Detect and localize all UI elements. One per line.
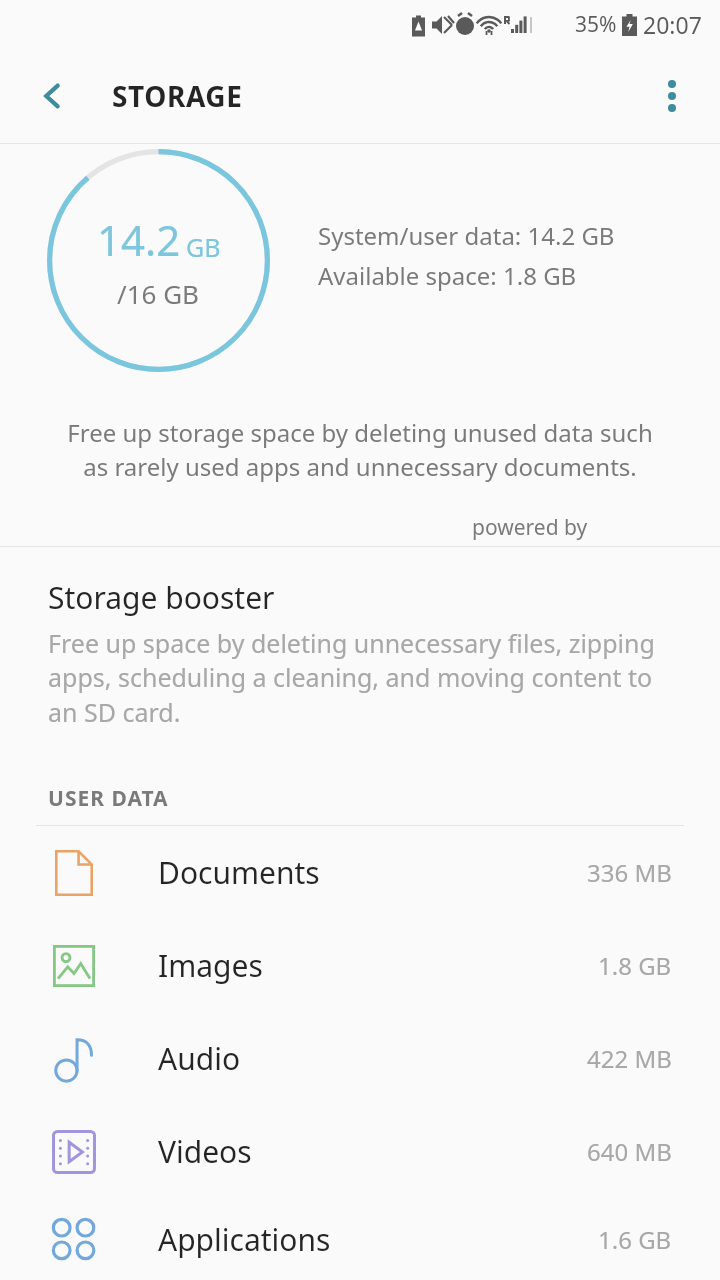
staticText: 20:07 [643,9,702,40]
button[interactable]: Videos [0,1105,720,1198]
staticText: STORAGE [112,77,243,115]
staticText: System/user data: 14.2 GB [318,219,615,252]
staticText: 1.8 GB [598,949,672,982]
staticText: Videos [158,1131,252,1172]
button[interactable]: Storage booster [0,547,720,740]
staticText: Free up storage space by deleting unused… [52,416,668,483]
staticText: powered by [472,513,588,542]
staticText: Free up space by deleting unnecessary fi… [48,626,670,730]
staticText: Storage booster [48,577,275,618]
staticText: USER DATA [48,784,169,813]
button[interactable]: More options [646,70,698,122]
staticText: /16 GB [117,276,200,311]
button[interactable]: Audio [0,1012,720,1105]
staticText: 35% [575,10,617,39]
staticText: Audio [158,1038,241,1079]
button[interactable]: Back [28,71,78,121]
staticText: Documents [158,852,320,893]
staticText: 1.6 GB [598,1223,672,1256]
button[interactable]: Applications [0,1198,720,1280]
staticText: 336 MB [587,856,672,889]
staticText: 422 MB [587,1042,672,1075]
staticText: GB [186,230,221,264]
button[interactable]: Images [0,919,720,1012]
staticText: Available space: 1.8 GB [318,259,577,292]
staticText: 14.2 [97,211,181,268]
staticText: 640 MB [587,1135,672,1168]
staticText: Applications [158,1219,331,1260]
button[interactable]: Documents [0,826,720,919]
staticText: Images [158,945,263,986]
